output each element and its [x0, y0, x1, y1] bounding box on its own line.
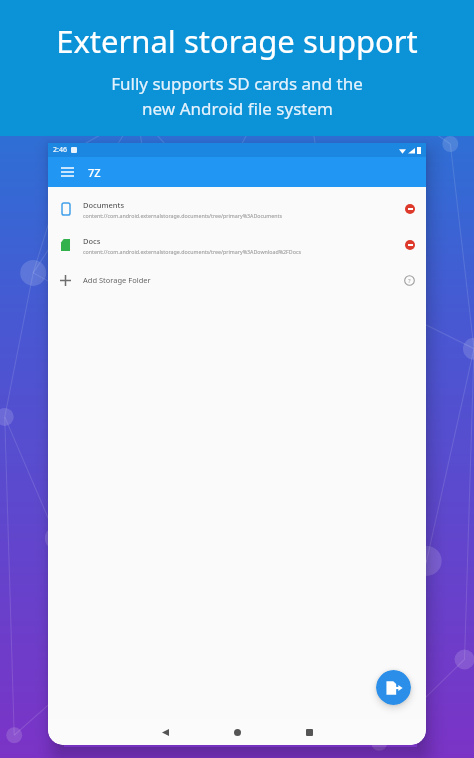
button[interactable]: Help — [393, 263, 426, 297]
staticText: new Android file system — [142, 97, 333, 120]
button[interactable]: Add Storage Folder — [48, 263, 426, 297]
button[interactable]: Extract archive — [376, 670, 411, 705]
button[interactable]: Remove Documents — [393, 191, 426, 227]
staticText: Fully supports SD cards and the — [111, 72, 363, 95]
button[interactable]: Open navigation menu — [57, 162, 77, 182]
button[interactable]: Back — [129, 719, 201, 745]
staticText: Docs — [83, 236, 101, 246]
staticText: ? — [408, 277, 411, 285]
staticText: 7Z — [88, 165, 101, 180]
staticText: Add Storage Folder — [83, 275, 151, 285]
staticText: Documents — [83, 200, 125, 210]
staticText: content://com.android.externalstorage.do… — [83, 212, 283, 219]
button[interactable]: Docs — [48, 227, 426, 263]
button[interactable]: Remove Docs — [393, 227, 426, 263]
staticText: content://com.android.externalstorage.do… — [83, 248, 302, 255]
staticText: 2:46 — [53, 145, 67, 155]
button[interactable]: Documents — [48, 191, 426, 227]
button[interactable]: Recent apps — [273, 719, 345, 745]
staticText: External storage support — [56, 20, 418, 62]
button[interactable]: Home — [201, 719, 273, 745]
